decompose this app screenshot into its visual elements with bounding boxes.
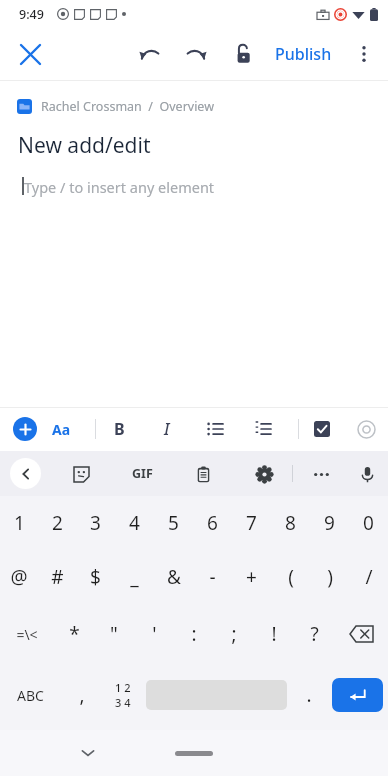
- button[interactable]: Rachel Crossman / Overview: [0, 95, 388, 118]
- button[interactable]: (: [271, 550, 310, 604]
- button[interactable]: Undo: [129, 33, 171, 75]
- staticText: &: [167, 564, 181, 590]
- staticText: 3: [90, 510, 101, 536]
- button[interactable]: ': [134, 604, 174, 664]
- button[interactable]: *: [54, 604, 94, 664]
- staticText: ?: [310, 621, 319, 647]
- button[interactable]: Aa: [46, 416, 77, 443]
- staticText: 2: [52, 510, 63, 536]
- button[interactable]: Enter: [332, 678, 383, 712]
- button[interactable]: 7: [232, 496, 271, 550]
- button[interactable]: Checklist: [307, 414, 337, 444]
- staticText: :: [191, 621, 197, 647]
- button[interactable]: Mention: [351, 414, 381, 444]
- button[interactable]: 4: [115, 496, 154, 550]
- staticText: 6: [207, 510, 218, 536]
- staticText: -: [209, 564, 216, 590]
- staticText: (: [288, 564, 294, 590]
- staticText: 4: [129, 510, 140, 536]
- staticText: _: [130, 564, 139, 590]
- button[interactable]: ": [94, 604, 134, 664]
- staticText: 8: [285, 510, 296, 536]
- button[interactable]: !: [254, 604, 294, 664]
- button[interactable]: GIF: [128, 461, 157, 486]
- button[interactable]: Backspace: [334, 604, 388, 664]
- staticText: Publish: [275, 43, 332, 65]
- button[interactable]: +: [232, 550, 271, 604]
- staticText: Rachel Crossman / Overview: [41, 98, 214, 115]
- button[interactable]: Home: [175, 751, 213, 756]
- button[interactable]: 8: [271, 496, 310, 550]
- button[interactable]: .: [290, 664, 327, 726]
- button[interactable]: Clipboard: [189, 460, 217, 488]
- staticText: ,: [79, 682, 85, 708]
- button[interactable]: 5: [154, 496, 193, 550]
- staticText: .: [306, 682, 312, 708]
- button[interactable]: More options: [344, 34, 384, 74]
- button[interactable]: #: [38, 550, 76, 604]
- button[interactable]: @: [0, 550, 38, 604]
- button[interactable]: Bulleted list: [200, 414, 230, 444]
- button[interactable]: ,: [61, 664, 102, 726]
- button[interactable]: &: [154, 550, 193, 604]
- staticText: 1 2: [115, 680, 131, 695]
- staticText: #: [51, 564, 64, 590]
- button[interactable]: :: [174, 604, 214, 664]
- button[interactable]: Insert: [13, 417, 37, 441]
- button[interactable]: Settings: [250, 460, 278, 488]
- button[interactable]: Stickers: [67, 460, 95, 488]
- button[interactable]: Unlock: [221, 33, 263, 75]
- staticText: ;: [231, 621, 237, 647]
- button[interactable]: Bold: [104, 414, 134, 444]
- staticText: 9: [324, 510, 335, 536]
- button[interactable]: Close: [8, 32, 52, 76]
- staticText: *: [69, 621, 80, 647]
- staticText: $: [90, 564, 101, 590]
- staticText: ': [152, 621, 157, 647]
- button[interactable]: -: [193, 550, 232, 604]
- staticText: 9:49: [19, 6, 44, 23]
- button[interactable]: Hide keyboard: [70, 735, 106, 771]
- staticText: New add/edit: [18, 131, 151, 160]
- button[interactable]: ;: [214, 604, 254, 664]
- staticText: I: [164, 418, 170, 440]
- staticText: B: [114, 418, 125, 440]
- button[interactable]: Voice input: [357, 460, 378, 488]
- button[interactable]: ?: [294, 604, 334, 664]
- staticText: /: [365, 564, 373, 590]
- button[interactable]: Back: [10, 458, 41, 489]
- staticText: GIF: [132, 465, 153, 482]
- button[interactable]: /: [349, 550, 388, 604]
- button[interactable]: =\<: [0, 604, 54, 664]
- staticText: 7: [246, 510, 257, 536]
- button[interactable]: $: [76, 550, 115, 604]
- button[interactable]: Publish: [267, 37, 340, 71]
- button[interactable]: 0: [349, 496, 388, 550]
- staticText: 5: [168, 510, 179, 536]
- staticText: ABC: [17, 686, 44, 705]
- staticText: 3 4: [115, 695, 131, 710]
- staticText: ): [327, 564, 333, 590]
- button[interactable]: More: [307, 460, 335, 488]
- button[interactable]: 1 2: [102, 664, 143, 726]
- staticText: 0: [363, 510, 374, 536]
- button[interactable]: Italic: [152, 414, 182, 444]
- button[interactable]: Numbered list: [248, 414, 278, 444]
- button[interactable]: _: [115, 550, 154, 604]
- button[interactable]: 3: [76, 496, 115, 550]
- staticText: ": [110, 621, 118, 647]
- staticText: Type / to insert any element: [24, 177, 215, 197]
- staticText: =\<: [16, 625, 38, 644]
- staticText: Aa: [52, 420, 71, 439]
- staticText: 1: [14, 510, 25, 536]
- button[interactable]: ABC: [0, 664, 61, 726]
- button[interactable]: 1: [0, 496, 38, 550]
- button[interactable]: Redo: [175, 33, 217, 75]
- button[interactable]: ): [310, 550, 349, 604]
- staticText: +: [246, 564, 257, 590]
- staticText: @: [10, 564, 28, 590]
- button[interactable]: 6: [193, 496, 232, 550]
- button[interactable]: 2: [38, 496, 76, 550]
- button[interactable]: 9: [310, 496, 349, 550]
